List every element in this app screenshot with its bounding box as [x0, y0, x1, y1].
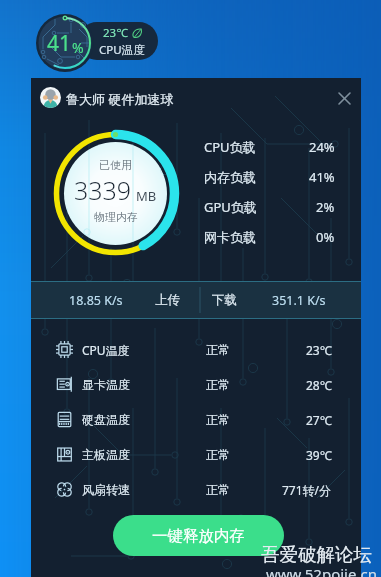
button[interactable]: 显卡温度 — [31, 367, 361, 402]
staticText: 39℃ — [306, 447, 332, 463]
staticText: CPU负载 — [204, 138, 256, 156]
staticText: 27℃ — [306, 412, 332, 428]
staticText: 41 — [47, 29, 72, 58]
staticText: 2% — [316, 198, 335, 216]
button[interactable]: CPU温度 — [31, 332, 361, 367]
staticText: 28℃ — [306, 377, 332, 393]
staticText: 网卡负载 — [204, 229, 256, 245]
button[interactable]: CPU usage 41 percent — [36, 14, 94, 72]
staticText: MB — [136, 187, 157, 205]
staticText: 0% — [316, 228, 335, 246]
button[interactable]: 一键释放内存 — [113, 515, 284, 556]
button[interactable]: CPU负载 — [204, 132, 335, 162]
staticText: 物理内存 — [94, 210, 138, 224]
staticText: 3339 — [74, 173, 132, 207]
staticText: 风扇转速 — [82, 482, 130, 497]
staticText: 下载 — [212, 292, 237, 308]
button[interactable]: 351.1 K/s — [259, 281, 339, 319]
button[interactable]: 硬盘温度 — [31, 402, 361, 437]
staticText: 18.85 K/s — [69, 292, 123, 309]
staticText: % — [72, 38, 84, 57]
staticText: 24% — [309, 138, 335, 156]
button[interactable]: 23℃ — [78, 22, 158, 60]
staticText: 鲁大师 硬件加速球 — [66, 90, 174, 108]
button[interactable]: 主板温度 — [31, 437, 361, 472]
staticText: 41% — [309, 168, 335, 186]
staticText: 771转/分 — [282, 482, 332, 498]
staticText: 硬盘温度 — [82, 412, 130, 427]
button[interactable]: 18.85 K/s — [56, 281, 136, 319]
staticText: 正常 — [206, 377, 230, 392]
button[interactable]: 网卡负载 — [204, 222, 335, 252]
button[interactable]: 内存负载 — [204, 162, 335, 192]
staticText: CPU温度 — [82, 342, 130, 358]
button[interactable]: Close — [331, 85, 357, 111]
staticText: 主板温度 — [82, 447, 130, 462]
staticText: 吾爱破解论坛 — [261, 543, 372, 566]
staticText: 正常 — [206, 482, 230, 497]
staticText: 正常 — [206, 412, 230, 427]
staticText: 正常 — [206, 342, 230, 357]
staticText: 23℃ — [103, 25, 128, 41]
staticText: 已使用 — [99, 158, 132, 172]
staticText: CPU温度 — [99, 42, 145, 58]
button[interactable]: 上传 — [127, 281, 207, 319]
staticText: 内存负载 — [204, 169, 256, 185]
staticText: 351.1 K/s — [272, 292, 326, 309]
staticText: 显卡温度 — [82, 377, 130, 392]
button[interactable]: 风扇转速 — [31, 472, 361, 507]
staticText: www.52pojie.cn — [266, 564, 377, 577]
staticText: 上传 — [155, 292, 180, 308]
staticText: 一键释放内存 — [152, 526, 245, 546]
button[interactable]: 下载 — [184, 281, 264, 319]
button[interactable]: GPU负载 — [204, 192, 335, 222]
staticText: GPU负载 — [204, 198, 257, 216]
staticText: 23℃ — [306, 342, 332, 358]
staticText: 正常 — [206, 447, 230, 462]
